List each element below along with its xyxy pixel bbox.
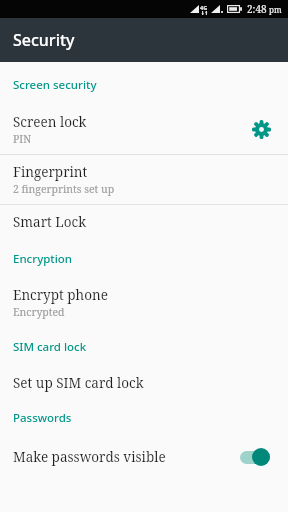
- staticText: Passwords: [13, 410, 288, 426]
- staticText: Screen lock: [13, 113, 87, 131]
- staticText: 2 fingerprints set up: [13, 182, 115, 196]
- staticText: Encryption: [13, 251, 288, 267]
- button[interactable]: Smart Lock: [0, 205, 288, 239]
- staticText: 2:48: [247, 2, 267, 16]
- staticText: Encrypt phone: [13, 286, 108, 304]
- staticText: 4G: [200, 4, 208, 11]
- button[interactable]: Make passwords visible toggle, on: [236, 443, 278, 471]
- staticText: PIN: [13, 132, 32, 146]
- staticText: Security: [13, 29, 75, 51]
- staticText: Fingerprint: [13, 163, 88, 181]
- staticText: Encrypted: [13, 305, 65, 319]
- button[interactable]: Screen lock settings: [244, 112, 278, 146]
- staticText: Smart Lock: [13, 213, 87, 231]
- button[interactable]: Make passwords visible: [0, 435, 288, 479]
- staticText: pm: [269, 4, 282, 15]
- staticText: Set up SIM card lock: [13, 374, 144, 392]
- staticText: Make passwords visible: [13, 448, 166, 466]
- button[interactable]: Fingerprint: [0, 155, 288, 204]
- button[interactable]: Set up SIM card lock: [0, 366, 288, 400]
- staticText: Screen security: [13, 77, 288, 93]
- button[interactable]: Screen lock: [0, 104, 288, 154]
- staticText: SIM card lock: [13, 339, 288, 355]
- button[interactable]: Encrypt phone: [0, 278, 288, 327]
